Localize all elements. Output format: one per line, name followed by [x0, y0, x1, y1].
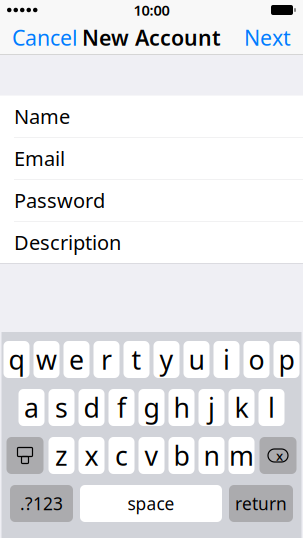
staticText: n: [203, 438, 219, 473]
staticText: b: [173, 438, 189, 473]
button[interactable]: g: [136, 389, 166, 426]
staticText: return: [235, 492, 287, 515]
button[interactable]: s: [46, 389, 76, 426]
staticText: 10:00: [133, 0, 169, 20]
button[interactable]: Delete: [256, 437, 299, 474]
staticText: v: [144, 438, 158, 473]
staticText: p: [278, 342, 294, 377]
staticText: s: [55, 390, 68, 425]
button[interactable]: d: [76, 389, 106, 426]
button[interactable]: n: [196, 437, 226, 474]
staticText: q: [8, 342, 24, 377]
button[interactable]: .?123: [6, 485, 77, 522]
staticText: o: [248, 342, 264, 377]
staticText: Next: [244, 23, 291, 52]
button[interactable]: i: [211, 341, 241, 378]
staticText: c: [115, 438, 128, 473]
button[interactable]: l: [256, 389, 286, 426]
staticText: h: [173, 390, 189, 425]
staticText: i: [223, 342, 230, 377]
button[interactable]: m: [226, 437, 256, 474]
staticText: d: [83, 390, 99, 425]
staticText: space: [127, 492, 174, 515]
staticText: Password: [14, 187, 105, 214]
button[interactable]: y: [151, 341, 181, 378]
staticText: f: [117, 390, 126, 425]
staticText: a: [24, 390, 39, 425]
staticText: y: [159, 342, 173, 377]
button[interactable]: Description: [0, 221, 303, 263]
staticText: e: [69, 342, 84, 377]
button[interactable]: k: [226, 389, 256, 426]
staticText: Cancel: [12, 23, 78, 52]
staticText: w: [36, 342, 57, 377]
button[interactable]: q: [1, 341, 31, 378]
button[interactable]: e: [61, 341, 91, 378]
button[interactable]: b: [166, 437, 196, 474]
button[interactable]: t: [121, 341, 151, 378]
button[interactable]: Password: [0, 179, 303, 221]
staticText: u: [188, 342, 204, 377]
button[interactable]: w: [31, 341, 61, 378]
button[interactable]: a: [16, 389, 46, 426]
button[interactable]: Name: [0, 95, 303, 137]
button[interactable]: v: [136, 437, 166, 474]
button[interactable]: z: [46, 437, 76, 474]
button[interactable]: space: [77, 485, 225, 522]
button[interactable]: h: [166, 389, 196, 426]
staticText: j: [208, 390, 215, 425]
button[interactable]: x: [76, 437, 106, 474]
staticText: Name: [14, 103, 70, 130]
button[interactable]: f: [106, 389, 136, 426]
staticText: g: [143, 390, 159, 425]
staticText: r: [101, 342, 112, 377]
staticText: m: [229, 438, 254, 473]
button[interactable]: r: [91, 341, 121, 378]
staticText: x: [84, 438, 98, 473]
staticText: x: [276, 447, 283, 464]
button[interactable]: Email: [0, 137, 303, 179]
button[interactable]: o: [241, 341, 271, 378]
button[interactable]: Next: [235, 15, 300, 60]
staticText: z: [55, 438, 68, 473]
staticText: Description: [14, 229, 121, 256]
button[interactable]: Cancel: [3, 15, 87, 60]
staticText: Email: [14, 145, 65, 172]
button[interactable]: return: [225, 485, 297, 522]
staticText: t: [131, 342, 141, 377]
button[interactable]: u: [181, 341, 211, 378]
button[interactable]: p: [271, 341, 301, 378]
staticText: l: [268, 390, 275, 425]
button[interactable]: c: [106, 437, 136, 474]
staticText: New Account: [82, 23, 221, 52]
staticText: .?123: [20, 492, 63, 515]
staticText: k: [234, 390, 248, 425]
button[interactable]: j: [196, 389, 226, 426]
button[interactable]: Shift: [3, 437, 46, 474]
